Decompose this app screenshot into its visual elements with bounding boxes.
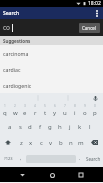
staticText: w bbox=[13, 109, 18, 117]
staticText: z bbox=[20, 139, 23, 147]
button[interactable]: z bbox=[16, 135, 26, 150]
button[interactable]: m bbox=[76, 135, 86, 150]
button[interactable]: v bbox=[46, 135, 56, 150]
button[interactable]: 7 bbox=[60, 103, 70, 119]
staticText: f bbox=[39, 123, 42, 131]
button[interactable]: d bbox=[25, 119, 35, 135]
button[interactable]: j bbox=[65, 119, 75, 135]
staticText: p bbox=[93, 109, 97, 117]
button[interactable]: Home bbox=[45, 168, 59, 182]
button[interactable]: 6 bbox=[50, 103, 60, 119]
button[interactable]: ?123 bbox=[0, 150, 16, 167]
staticText: e bbox=[23, 109, 27, 117]
button[interactable]: Voice input bbox=[92, 95, 99, 102]
button[interactable]: k bbox=[75, 119, 85, 135]
staticText: n bbox=[69, 139, 73, 147]
staticText: 7 bbox=[64, 104, 66, 108]
staticText: 4 bbox=[34, 104, 36, 108]
staticText: 5 bbox=[44, 104, 46, 108]
button[interactable]: , bbox=[16, 150, 26, 167]
button[interactable]: n bbox=[66, 135, 76, 150]
staticText: i bbox=[74, 109, 76, 117]
staticText: 1 bbox=[4, 104, 6, 108]
button[interactable]: 5 bbox=[40, 103, 50, 119]
staticText: cardiogenic bbox=[3, 82, 32, 89]
button[interactable]: 9 bbox=[80, 103, 90, 119]
staticText: Cancel bbox=[82, 25, 97, 31]
staticText: Search bbox=[86, 156, 101, 162]
staticText: m bbox=[78, 139, 84, 147]
button[interactable]: 2 bbox=[10, 103, 20, 119]
staticText: g bbox=[48, 123, 52, 131]
staticText: ?123 bbox=[4, 156, 13, 161]
staticText: h bbox=[58, 123, 62, 131]
staticText: k bbox=[78, 123, 82, 131]
staticText: v bbox=[49, 139, 53, 147]
button[interactable]: More options bbox=[90, 7, 103, 19]
button[interactable]: . bbox=[76, 150, 84, 167]
staticText: 8 bbox=[74, 104, 76, 108]
staticText: carcinoma bbox=[3, 50, 29, 57]
button[interactable]: Recent apps bbox=[74, 168, 88, 182]
button[interactable]: Search bbox=[84, 150, 103, 167]
staticText: o bbox=[83, 109, 87, 117]
button[interactable]: Shift bbox=[0, 135, 16, 150]
staticText: 9 bbox=[84, 104, 86, 108]
staticText: q bbox=[3, 109, 7, 117]
staticText: t bbox=[44, 109, 47, 117]
button[interactable]: 3 bbox=[20, 103, 30, 119]
button[interactable]: cardiac bbox=[0, 61, 103, 77]
staticText: 3 bbox=[24, 104, 26, 108]
button[interactable]: x bbox=[26, 135, 36, 150]
staticText: 18:02 bbox=[88, 0, 101, 7]
staticText: r bbox=[34, 109, 37, 117]
button[interactable]: l bbox=[85, 119, 95, 135]
staticText: d bbox=[28, 123, 32, 131]
staticText: cardiac bbox=[3, 66, 21, 73]
button[interactable]: f bbox=[35, 119, 45, 135]
button[interactable]: a bbox=[5, 119, 15, 135]
staticText: 0 bbox=[94, 104, 96, 108]
staticText: Search bbox=[3, 10, 20, 17]
staticText: 6 bbox=[54, 104, 56, 108]
button[interactable]: g bbox=[45, 119, 55, 135]
staticText: . bbox=[79, 155, 81, 162]
button[interactable]: s bbox=[15, 119, 25, 135]
staticText: s bbox=[19, 123, 22, 131]
staticText: a bbox=[8, 123, 12, 131]
staticText: j bbox=[69, 123, 71, 131]
staticText: y bbox=[53, 109, 57, 117]
staticText: Suggestions bbox=[3, 38, 31, 44]
button[interactable]: c bbox=[36, 135, 46, 150]
staticText: 2 bbox=[14, 104, 16, 108]
staticText: co bbox=[3, 23, 11, 32]
button[interactable]: carcinoma bbox=[0, 45, 103, 61]
staticText: l bbox=[89, 123, 91, 131]
button[interactable]: cardiogenic bbox=[0, 77, 103, 93]
button[interactable]: Backspace bbox=[86, 135, 103, 150]
staticText: , bbox=[20, 155, 22, 162]
staticText: u bbox=[63, 109, 67, 117]
staticText: x bbox=[29, 139, 33, 147]
staticText: b bbox=[59, 139, 63, 147]
button[interactable]: 0 bbox=[90, 103, 100, 119]
button[interactable]: 8 bbox=[70, 103, 80, 119]
button[interactable]: b bbox=[56, 135, 66, 150]
button[interactable]: Cancel bbox=[79, 23, 100, 33]
button[interactable]: 1 bbox=[0, 103, 10, 119]
staticText: c bbox=[40, 139, 43, 147]
button[interactable]: Back bbox=[15, 168, 29, 182]
button[interactable]: h bbox=[55, 119, 65, 135]
button[interactable]: 4 bbox=[30, 103, 40, 119]
